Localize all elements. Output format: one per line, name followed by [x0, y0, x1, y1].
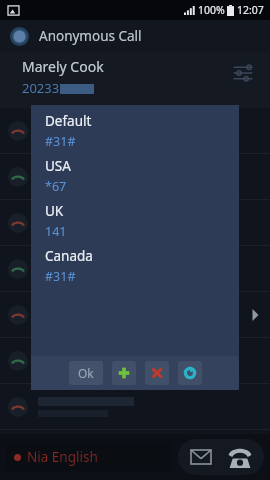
staticText: USA	[45, 157, 71, 175]
staticText: #31#	[45, 268, 76, 285]
button[interactable]: UK	[45, 201, 239, 246]
button[interactable]: Refresh	[178, 361, 202, 385]
button[interactable]	[0, 246, 270, 291]
button[interactable]: Message	[185, 441, 217, 473]
button[interactable]	[0, 292, 270, 337]
button[interactable]: Nia English	[6, 443, 172, 471]
button[interactable]	[0, 108, 270, 153]
button[interactable]: Delete	[145, 361, 169, 385]
staticText: #31#	[45, 133, 76, 150]
button[interactable]: App icon	[10, 27, 29, 46]
staticText: UK	[45, 202, 64, 220]
staticText: Default	[45, 112, 92, 130]
staticText: Marely Cook	[22, 57, 104, 76]
staticText: Nia English	[27, 448, 98, 466]
staticText: Anonymous Call	[39, 27, 142, 45]
staticText: 141	[45, 223, 67, 240]
button[interactable]	[0, 200, 270, 245]
button[interactable]	[0, 154, 270, 199]
button[interactable]: USA	[45, 156, 239, 201]
staticText: 100%	[198, 3, 225, 17]
button[interactable]: Default	[45, 111, 239, 156]
button[interactable]: Settings	[226, 56, 260, 90]
staticText: 20233	[22, 79, 60, 97]
staticText: *67	[45, 178, 67, 195]
staticText: 12:07	[237, 3, 264, 17]
button[interactable]: Canada	[45, 246, 239, 291]
button[interactable]: Ok	[69, 361, 103, 385]
staticText: Canada	[45, 247, 93, 265]
button[interactable]: Call	[223, 440, 257, 474]
button[interactable]: Add	[112, 361, 136, 385]
button[interactable]	[0, 384, 270, 429]
staticText: Ok	[78, 365, 94, 381]
button[interactable]	[0, 338, 270, 383]
